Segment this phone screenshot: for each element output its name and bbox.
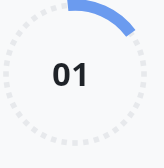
button[interactable]: Timer progress, step 01 [0,0,164,168]
staticText: 01 [41,51,101,96]
